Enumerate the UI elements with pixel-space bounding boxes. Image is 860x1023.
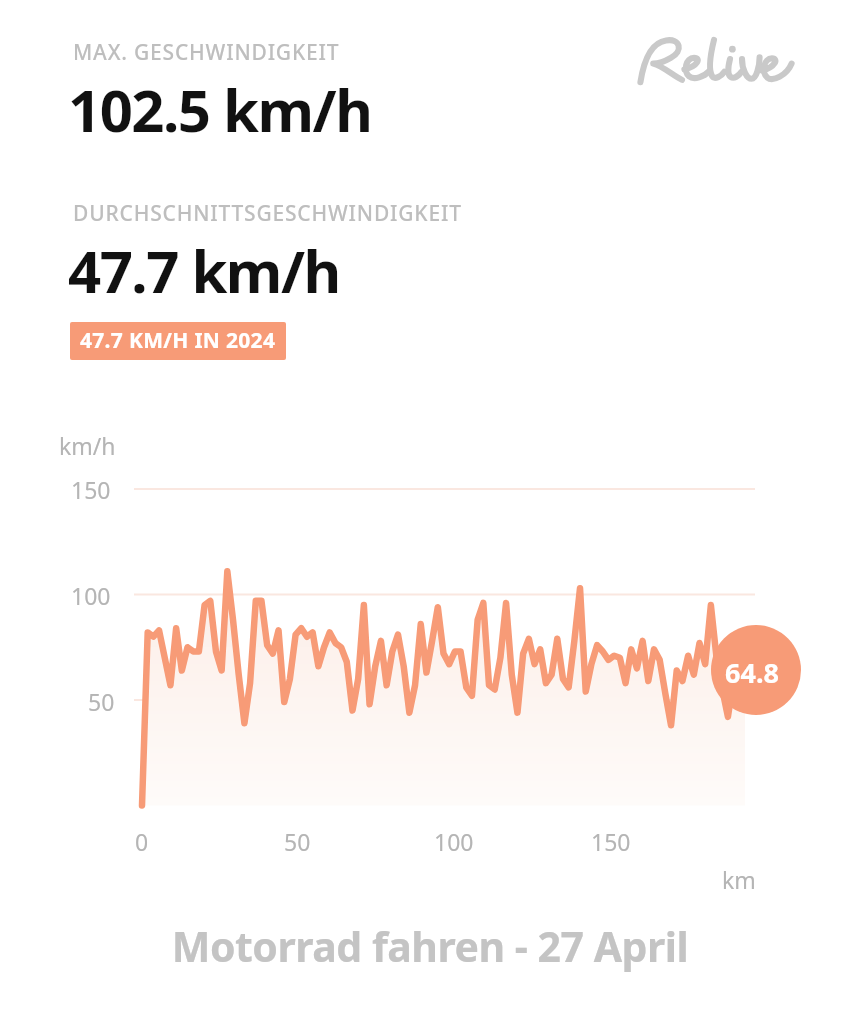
staticText: km/h	[59, 430, 116, 461]
staticText: 150	[71, 474, 111, 505]
button[interactable]: Relive	[634, 30, 794, 88]
staticText: Motorrad fahren - 27 April	[0, 918, 860, 1023]
staticText: MAX. GESCHWINDIGKEIT	[73, 38, 340, 67]
staticText: 47.7 km/h	[68, 231, 340, 310]
staticText: 50	[88, 686, 115, 717]
staticText: 0	[135, 826, 149, 857]
staticText: 47.7 KM/H IN 2024	[80, 326, 276, 355]
staticText: km	[722, 864, 756, 895]
staticText: 150	[591, 826, 631, 857]
staticText: 50	[284, 826, 311, 857]
staticText: DURCHSCHNITTSGESCHWINDIGKEIT	[73, 199, 462, 228]
staticText: 64.8	[725, 654, 779, 691]
staticText: 102.5 km/h	[68, 70, 372, 149]
button[interactable]: 47.7 KM/H IN 2024	[70, 322, 286, 360]
staticText: 100	[71, 580, 111, 611]
button[interactable]: 64.8	[711, 625, 801, 715]
staticText: 100	[434, 826, 474, 857]
